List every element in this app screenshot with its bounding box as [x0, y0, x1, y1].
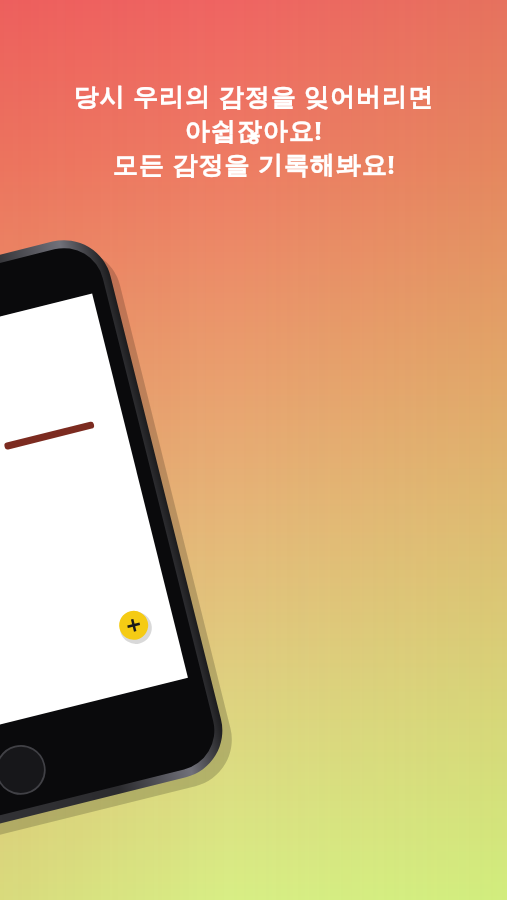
- staticText: 아쉽잖아요!: [184, 113, 323, 147]
- button[interactable]: 감정 기록 추가: [112, 618, 142, 648]
- staticText: 모든 감정을 기록해봐요!: [112, 147, 396, 181]
- staticText: 당시 우리의 감정을 잊어버리면: [73, 79, 434, 113]
